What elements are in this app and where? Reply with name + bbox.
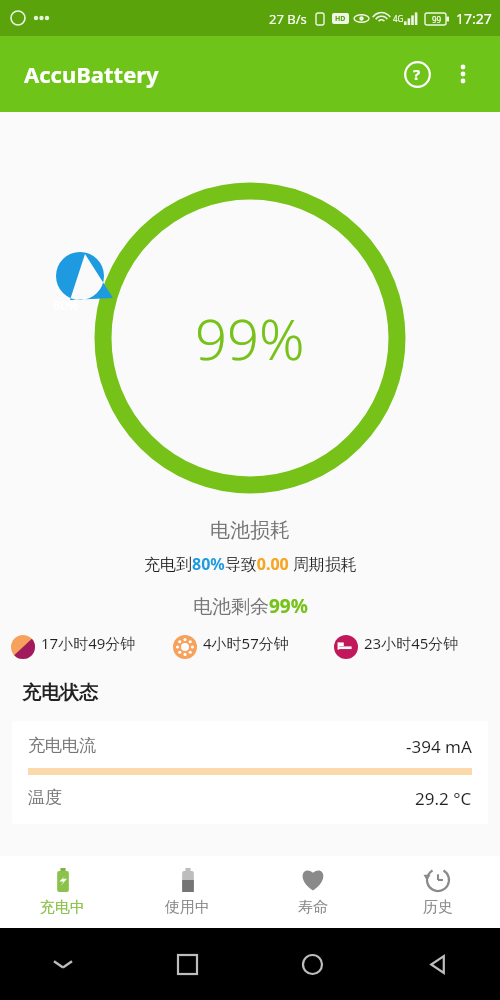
button[interactable]: 使用中 — [125, 856, 250, 928]
staticText: 充电到80%导致0.00 周期损耗 — [144, 553, 357, 575]
button[interactable]: More options — [440, 51, 486, 97]
button[interactable]: 历史 — [375, 856, 500, 928]
staticText: 寿命 — [298, 898, 328, 917]
staticText: 电池损耗 — [210, 518, 290, 543]
staticText: 99% — [195, 300, 305, 376]
staticText: 27 B/s — [269, 10, 307, 28]
staticText: HD — [335, 14, 346, 24]
staticText: 17:27 — [456, 9, 492, 28]
staticText: 历史 — [423, 898, 453, 917]
staticText: 4小时57分钟 — [203, 633, 289, 653]
staticText: 17小时49分钟 — [41, 633, 136, 653]
button[interactable]: 充电电流 — [12, 721, 488, 824]
button[interactable]: 充电中 — [0, 856, 125, 928]
button[interactable]: Recents — [125, 928, 250, 1000]
staticText: 23小时45分钟 — [364, 633, 459, 653]
button[interactable]: Home — [250, 928, 375, 1000]
staticText: 99 — [432, 14, 442, 25]
button[interactable]: Back — [375, 928, 500, 1000]
staticText: -394 mA — [406, 735, 472, 758]
staticText: 4G — [393, 13, 404, 24]
staticText: 充电中 — [40, 898, 85, 917]
staticText: 电池剩余99% — [193, 593, 308, 619]
staticText: 温度 — [28, 787, 62, 808]
staticText: 29.2 °C — [415, 787, 472, 810]
staticText: AccuBattery — [24, 59, 159, 89]
staticText: 80% — [53, 296, 79, 314]
staticText: 充电状态 — [22, 681, 98, 705]
button[interactable]: 23小时45分钟 — [331, 633, 492, 659]
button[interactable]: 寿命 — [250, 856, 375, 928]
button[interactable]: 4小时57分钟 — [170, 633, 331, 659]
staticText: 使用中 — [165, 898, 210, 917]
button[interactable]: Help — [394, 51, 440, 97]
staticText: 充电电流 — [28, 735, 96, 756]
button[interactable]: Hide — [0, 928, 125, 1000]
button[interactable]: 17小时49分钟 — [8, 633, 170, 659]
staticText: ? — [413, 64, 421, 84]
